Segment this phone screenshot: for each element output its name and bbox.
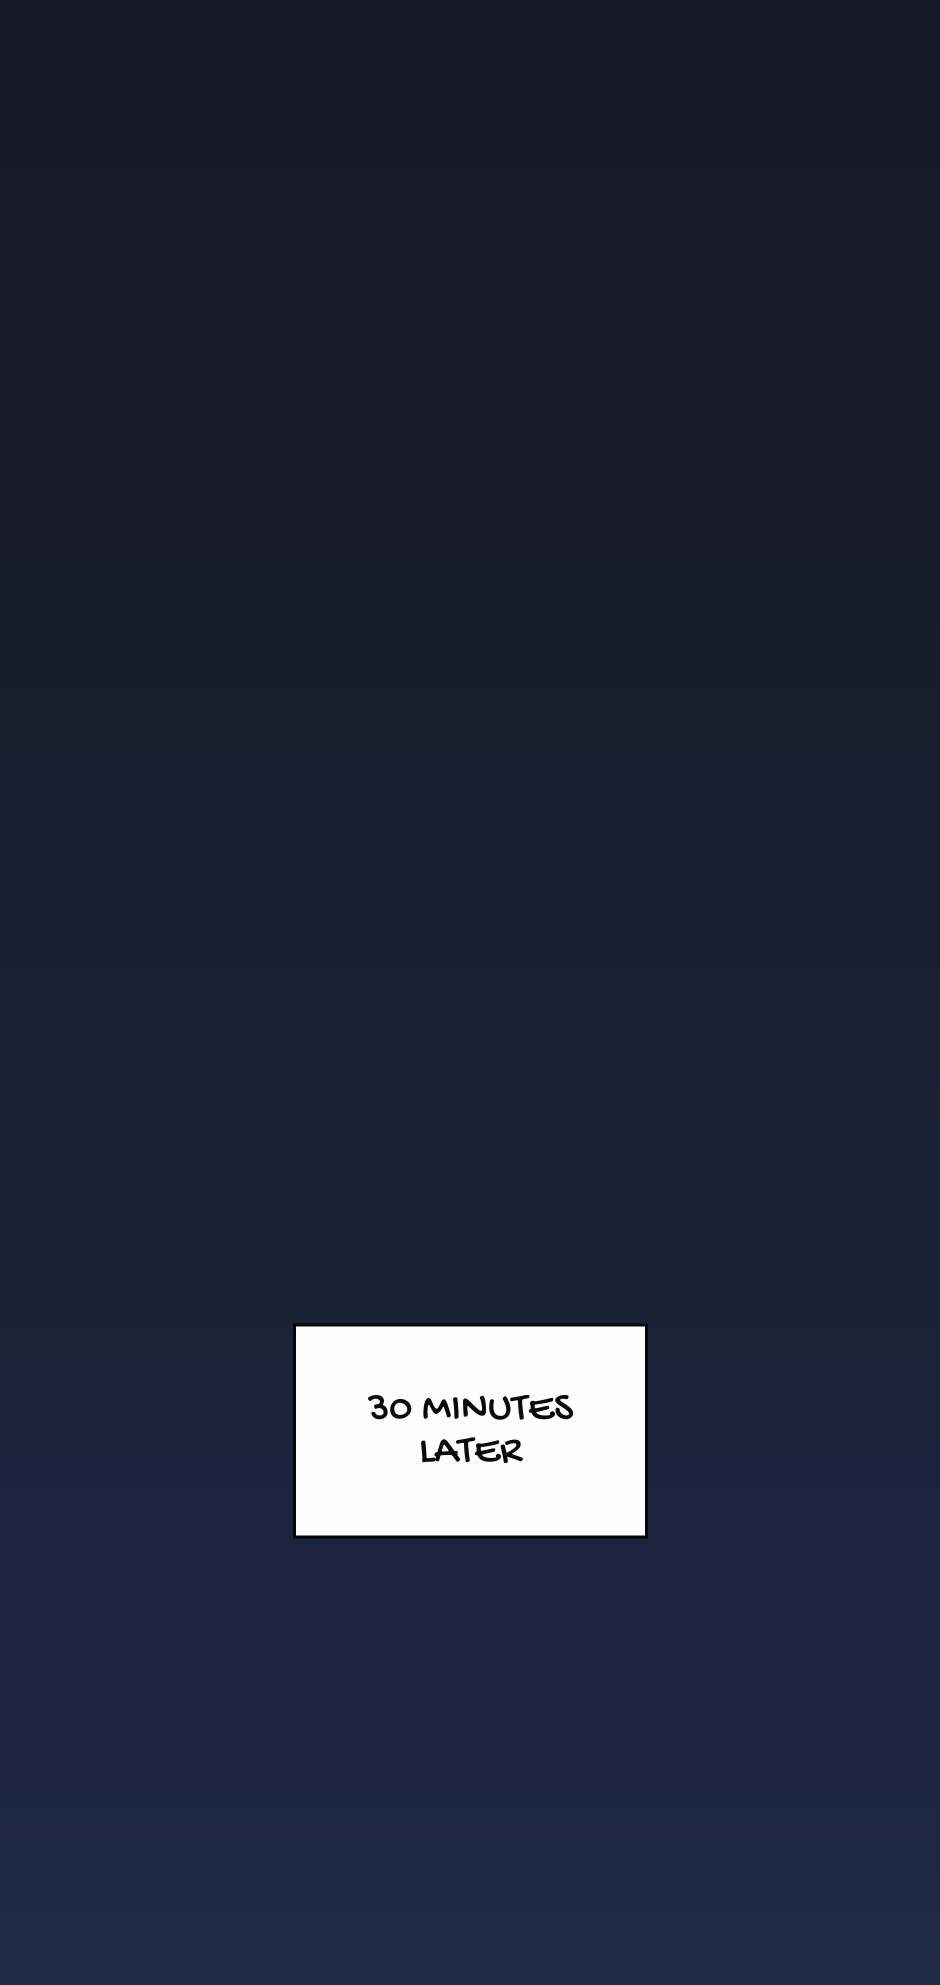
staticText: 30 MINUTES (368, 1386, 573, 1435)
staticText: LATER (419, 1428, 522, 1477)
